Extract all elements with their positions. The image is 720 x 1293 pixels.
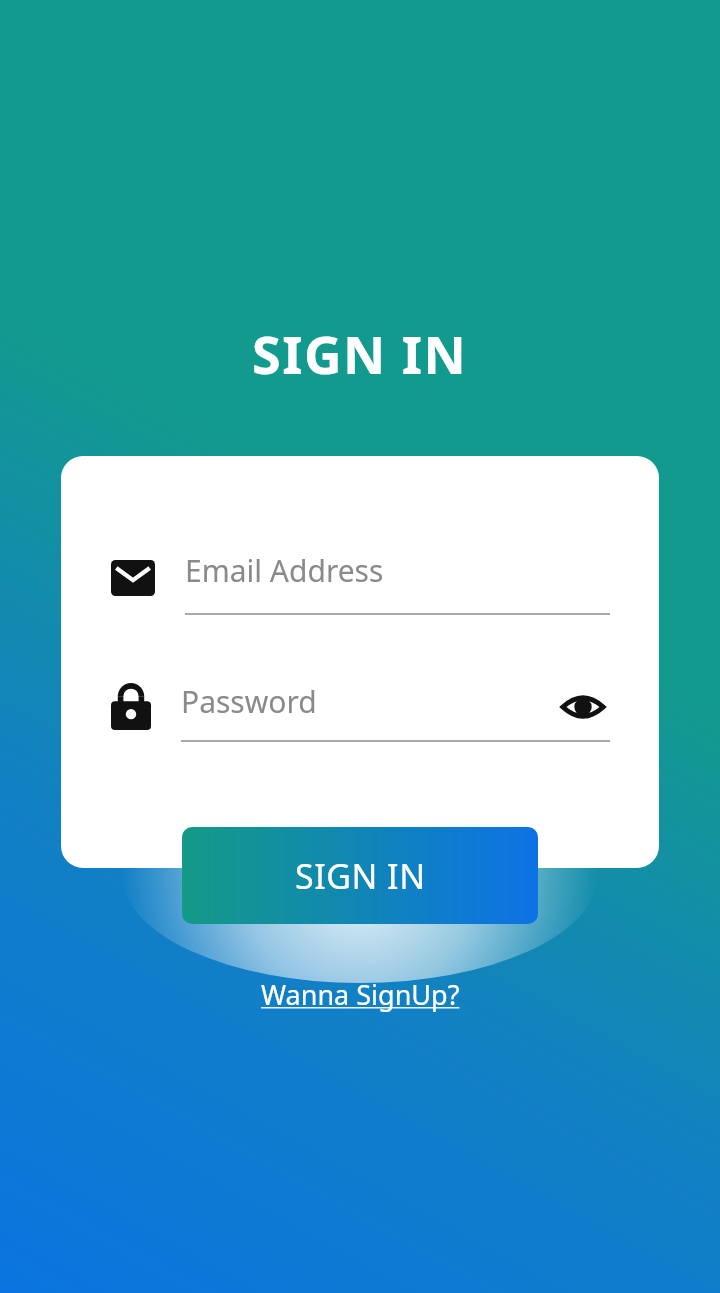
button[interactable]: Email Address <box>61 550 659 642</box>
button[interactable]: Show password <box>556 680 610 734</box>
staticText: SIGN IN <box>295 853 426 899</box>
button[interactable]: Wanna SignUp? <box>253 972 468 1017</box>
button[interactable]: SIGN IN <box>182 827 538 924</box>
button[interactable]: Password <box>61 674 659 766</box>
staticText: SIGN IN <box>252 318 468 389</box>
staticText: Wanna SignUp? <box>261 976 460 1013</box>
staticText: Email Address <box>185 550 384 591</box>
staticText: Password <box>181 681 556 722</box>
